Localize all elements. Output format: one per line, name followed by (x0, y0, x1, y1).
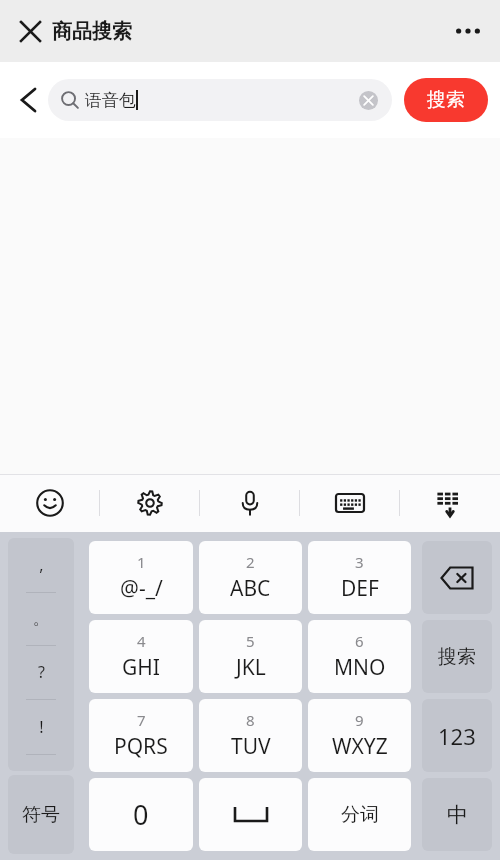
staticText: 搜索 (427, 88, 465, 112)
staticText: 3 (355, 552, 364, 572)
button[interactable]: Emoji (0, 474, 100, 532)
staticText: GHI (122, 653, 160, 682)
button[interactable]: 语音包 (48, 79, 392, 121)
button[interactable]: 7 (89, 699, 193, 772)
staticText: 分词 (341, 803, 379, 827)
staticText: 语音包 (85, 90, 136, 111)
button[interactable]: , (8, 538, 74, 771)
staticText: ! (39, 716, 44, 738)
staticText: 6 (355, 631, 364, 651)
button[interactable]: 搜索 (422, 620, 492, 693)
button[interactable]: Delete (422, 541, 492, 614)
staticText: DEF (341, 574, 379, 603)
button[interactable]: Close (6, 7, 54, 55)
button[interactable]: 1 (89, 541, 193, 614)
button[interactable]: Settings (100, 474, 200, 532)
button[interactable]: 4 (89, 620, 193, 693)
button[interactable]: More options (444, 7, 492, 55)
staticText: 中 (447, 802, 468, 828)
staticText: 1 (137, 552, 146, 572)
button[interactable]: Back (8, 80, 48, 120)
staticText: 7 (137, 710, 146, 730)
staticText: 搜索 (438, 645, 476, 669)
staticText: ABC (230, 574, 271, 603)
staticText: ? (38, 661, 45, 683)
staticText: 商品搜索 (52, 19, 132, 44)
button[interactable]: Hide keyboard (400, 474, 500, 532)
button[interactable]: 中 (422, 778, 492, 851)
staticText: PQRS (114, 732, 168, 761)
staticText: 2 (246, 552, 255, 572)
button[interactable]: 2 (199, 541, 302, 614)
staticText: 5 (246, 631, 255, 651)
staticText: 123 (438, 721, 476, 751)
staticText: , (39, 554, 44, 576)
button[interactable]: 搜索 (404, 78, 488, 122)
staticText: 9 (355, 710, 364, 730)
button[interactable]: 0 (89, 778, 193, 851)
staticText: 符号 (22, 803, 60, 827)
button[interactable]: 5 (199, 620, 302, 693)
staticText: TUV (231, 732, 271, 761)
staticText: 0 (133, 796, 149, 833)
staticText: WXYZ (332, 732, 388, 761)
staticText: 。 (33, 609, 49, 629)
staticText: 8 (246, 710, 255, 730)
staticText: MNO (334, 653, 386, 682)
button[interactable]: 6 (308, 620, 411, 693)
button[interactable]: 符号 (8, 775, 74, 854)
button[interactable]: 9 (308, 699, 411, 772)
staticText: 4 (137, 631, 146, 651)
staticText: JKL (236, 653, 266, 682)
staticText: @-_/ (120, 574, 163, 603)
button[interactable]: Clear text (357, 89, 379, 111)
button[interactable]: Keyboard layout (300, 474, 400, 532)
button[interactable]: 8 (199, 699, 302, 772)
button[interactable]: 123 (422, 699, 492, 772)
button[interactable]: Voice input (200, 474, 300, 532)
button[interactable] (199, 778, 302, 851)
button[interactable]: 3 (308, 541, 411, 614)
button[interactable]: 分词 (308, 778, 411, 851)
